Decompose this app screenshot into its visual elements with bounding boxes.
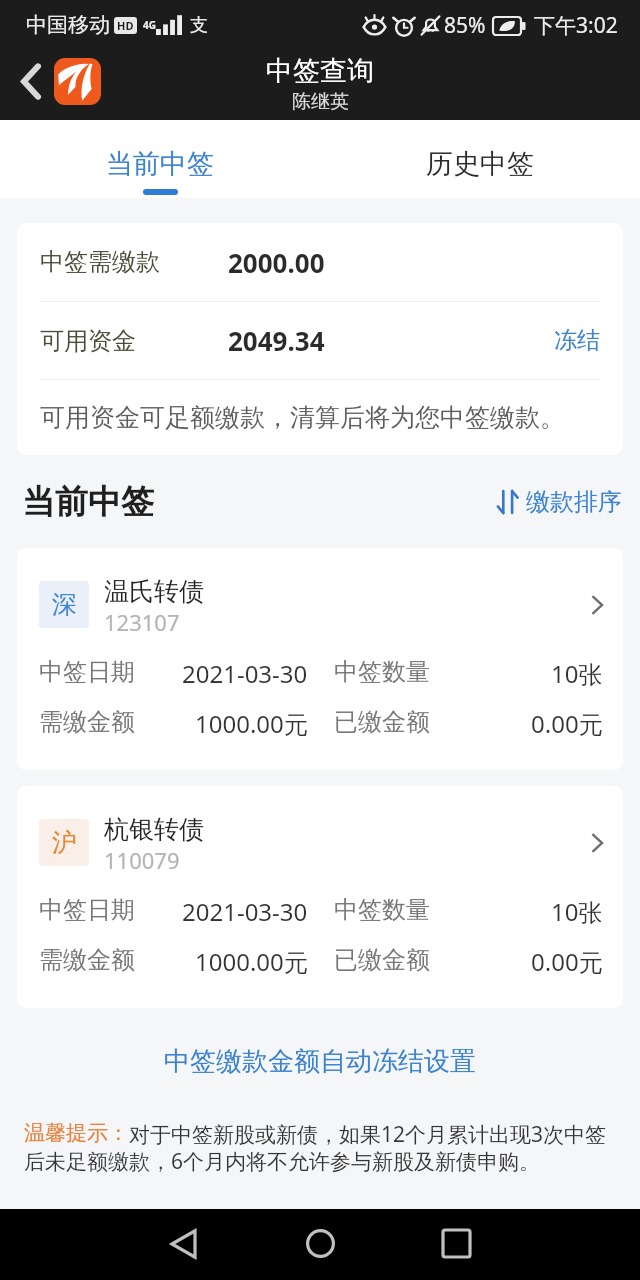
staticText: 0.00元 — [531, 945, 603, 978]
staticText: 中国移动 — [26, 12, 110, 38]
button[interactable]: 当前中签 — [0, 120, 320, 198]
staticText: 可用资金 — [40, 326, 136, 356]
staticText: 后未足额缴款，6个月内将不允许参与新股及新债申购。 — [24, 1147, 541, 1176]
staticText: 2021-03-30 — [182, 657, 308, 690]
staticText: 已缴金额 — [334, 707, 430, 737]
staticText: 2000.00 — [228, 245, 325, 280]
staticText: 1000.00元 — [195, 707, 308, 740]
staticText: 2049.34 — [228, 323, 325, 358]
button[interactable]: Recent apps — [422, 1209, 490, 1280]
button[interactable]: 缴款排序 — [493, 483, 626, 521]
button[interactable]: Back — [149, 1209, 217, 1280]
button[interactable]: 沪 — [17, 786, 623, 1008]
staticText: 深 — [52, 589, 77, 620]
staticText: 中签数量 — [334, 657, 430, 687]
staticText: 110079 — [104, 845, 180, 875]
staticText: 陈继英 — [292, 90, 349, 114]
staticText: 中签需缴款 — [40, 247, 160, 277]
staticText: 0.00元 — [531, 707, 603, 740]
staticText: 杭银转债 — [104, 814, 204, 845]
button[interactable]: 深 — [17, 548, 623, 770]
button[interactable]: 冻结 — [554, 326, 600, 355]
button[interactable]: App home — [54, 58, 101, 105]
staticText: 中签日期 — [39, 657, 135, 687]
staticText: 需缴金额 — [39, 707, 135, 737]
button[interactable]: Back — [9, 55, 53, 107]
staticText: 当前中签 — [106, 147, 214, 181]
staticText: 10张 — [551, 657, 603, 690]
staticText: 中签缴款金额自动冻结设置 — [164, 1045, 476, 1078]
staticText: 中签查询 — [266, 54, 374, 88]
button[interactable]: 中签缴款金额自动冻结设置 — [156, 1041, 484, 1082]
staticText: 支 — [190, 14, 208, 37]
staticText: 温氏转债 — [104, 576, 204, 607]
button[interactable]: 历史中签 — [320, 120, 640, 198]
button[interactable]: Home — [286, 1209, 354, 1280]
staticText: 缴款排序 — [526, 487, 622, 517]
staticText: 4G — [143, 18, 156, 32]
staticText: 下午3:02 — [534, 11, 618, 40]
staticText: 需缴金额 — [39, 945, 135, 975]
staticText: 10张 — [551, 895, 603, 928]
staticText: 沪 — [52, 827, 77, 858]
staticText: 85% — [444, 11, 486, 40]
staticText: 1000.00元 — [195, 945, 308, 978]
staticText: HD — [117, 18, 134, 33]
staticText: 中签数量 — [334, 895, 430, 925]
staticText: 已缴金额 — [334, 945, 430, 975]
staticText: 可用资金可足额缴款，清算后将为您中签缴款。 — [40, 402, 565, 433]
staticText: 对于中签新股或新债，如果12个月累计出现3次中签 — [129, 1120, 607, 1149]
staticText: 中签日期 — [39, 895, 135, 925]
staticText: 历史中签 — [426, 147, 534, 181]
staticText: 当前中签 — [22, 481, 154, 523]
staticText: 温馨提示： — [24, 1120, 129, 1146]
staticText: 2021-03-30 — [182, 895, 308, 928]
staticText: 123107 — [104, 607, 180, 637]
staticText: 冻结 — [554, 326, 600, 355]
